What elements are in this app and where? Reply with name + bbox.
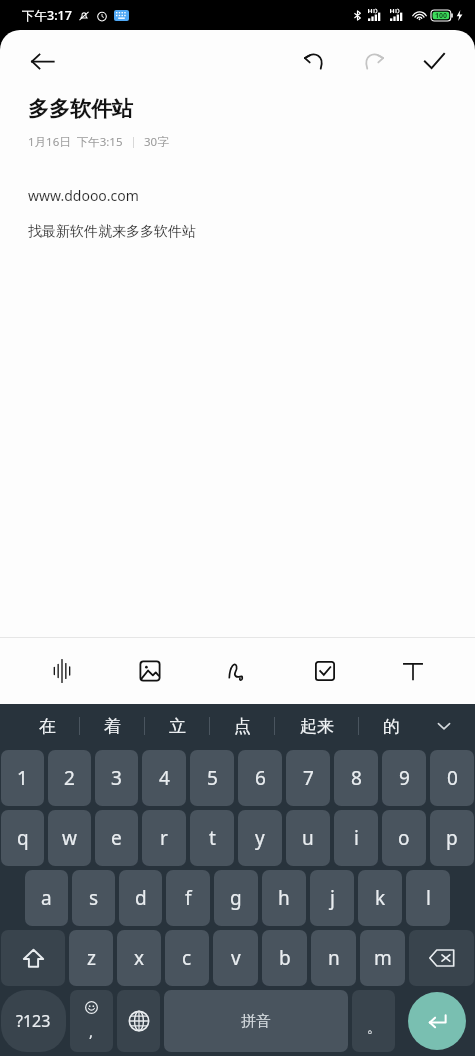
button[interactable]: 8 (334, 750, 378, 806)
staticText: 点 (234, 716, 251, 737)
button[interactable]: Text format (387, 645, 439, 697)
button[interactable]: 立 (145, 704, 209, 748)
staticText: k (375, 885, 386, 911)
staticText: 9 (399, 765, 410, 791)
staticText: x (134, 945, 145, 971)
staticText: 立 (169, 716, 186, 737)
button[interactable]: 0 (430, 750, 474, 806)
button[interactable]: Switch language (117, 990, 160, 1052)
button[interactable]: y (238, 810, 282, 866)
button[interactable]: 5 (190, 750, 234, 806)
button[interactable]: u (286, 810, 330, 866)
staticText: q (17, 825, 29, 851)
button[interactable]: Redo (351, 38, 397, 84)
staticText: 。 (367, 1019, 381, 1037)
staticText: w (62, 825, 77, 851)
staticText: e (111, 825, 122, 851)
button[interactable]: ?123 (1, 990, 66, 1052)
button[interactable]: Emoji and comma (70, 990, 113, 1052)
button[interactable]: 拼音 (164, 990, 348, 1052)
button[interactable]: o (382, 810, 426, 866)
staticText: 起来 (300, 716, 334, 737)
staticText: i (354, 825, 359, 851)
staticText: 0 (447, 765, 458, 791)
button[interactable]: Image (124, 645, 176, 697)
button[interactable]: 9 (382, 750, 426, 806)
button[interactable]: c (165, 930, 209, 986)
staticText: h (278, 885, 290, 911)
button[interactable]: Voice (36, 645, 88, 697)
button[interactable]: h (262, 870, 306, 926)
button[interactable]: s (72, 870, 115, 926)
button[interactable]: 点 (210, 704, 274, 748)
staticText: 100 (435, 11, 448, 21)
staticText: 6 (255, 765, 266, 791)
button[interactable]: Collapse suggestions (427, 709, 461, 743)
button[interactable]: 1 (1, 750, 44, 806)
button[interactable]: Enter (408, 992, 466, 1050)
button[interactable]: 7 (286, 750, 330, 806)
button[interactable]: a (25, 870, 68, 926)
button[interactable]: t (190, 810, 234, 866)
button[interactable]: d (119, 870, 162, 926)
staticText: 7 (303, 765, 314, 791)
button[interactable]: n (311, 930, 356, 986)
button[interactable]: x (117, 930, 161, 986)
button[interactable]: i (334, 810, 378, 866)
staticText: j (330, 885, 335, 911)
staticText: 4 (159, 765, 170, 791)
button[interactable]: b (262, 930, 307, 986)
staticText: l (426, 885, 431, 911)
button[interactable]: v (213, 930, 258, 986)
button[interactable]: Handwriting (211, 645, 263, 697)
staticText: 找最新软件就来多多软件站 (28, 223, 196, 241)
button[interactable]: e (95, 810, 138, 866)
button[interactable]: p (430, 810, 474, 866)
staticText: t (209, 825, 216, 851)
staticText: 8 (351, 765, 362, 791)
button[interactable]: j (310, 870, 354, 926)
staticText: 30字 (144, 134, 169, 150)
staticText: r (160, 825, 168, 851)
button[interactable]: r (142, 810, 186, 866)
button[interactable]: 。 (352, 990, 395, 1052)
button[interactable]: 在 (16, 704, 79, 748)
button[interactable]: k (358, 870, 402, 926)
button[interactable]: l (406, 870, 450, 926)
button[interactable]: g (214, 870, 258, 926)
button[interactable]: 6 (238, 750, 282, 806)
button[interactable]: Back (20, 39, 64, 83)
button[interactable]: Undo (291, 38, 337, 84)
button[interactable]: f (166, 870, 210, 926)
staticText: 下午3:17 (22, 7, 72, 24)
staticText: v (231, 945, 241, 971)
staticText: 多多软件站 (28, 96, 133, 122)
staticText: c (182, 945, 192, 971)
button[interactable]: 的 (359, 704, 423, 748)
button[interactable]: z (69, 930, 113, 986)
button[interactable]: Shift (1, 930, 65, 986)
staticText: 2 (64, 765, 75, 791)
button[interactable]: 3 (95, 750, 138, 806)
button[interactable]: 着 (80, 704, 144, 748)
button[interactable]: 4 (142, 750, 186, 806)
button[interactable]: Done (411, 38, 457, 84)
staticText: a (41, 885, 52, 911)
button[interactable]: 起来 (275, 704, 358, 748)
staticText: b (279, 945, 291, 971)
button[interactable]: Checklist (299, 645, 351, 697)
staticText: 1 (17, 765, 28, 791)
button[interactable]: w (48, 810, 91, 866)
staticText: 的 (383, 716, 400, 737)
button[interactable]: Backspace (409, 930, 474, 986)
staticText: o (398, 825, 410, 851)
button[interactable]: 2 (48, 750, 91, 806)
staticText: 1月16日 下午3:15 (28, 134, 123, 150)
button[interactable]: q (1, 810, 44, 866)
staticText: u (302, 825, 314, 851)
staticText: m (374, 945, 392, 971)
button[interactable]: m (360, 930, 405, 986)
staticText: f (185, 885, 192, 911)
staticText: 在 (39, 716, 56, 737)
staticText: , (89, 1021, 94, 1041)
